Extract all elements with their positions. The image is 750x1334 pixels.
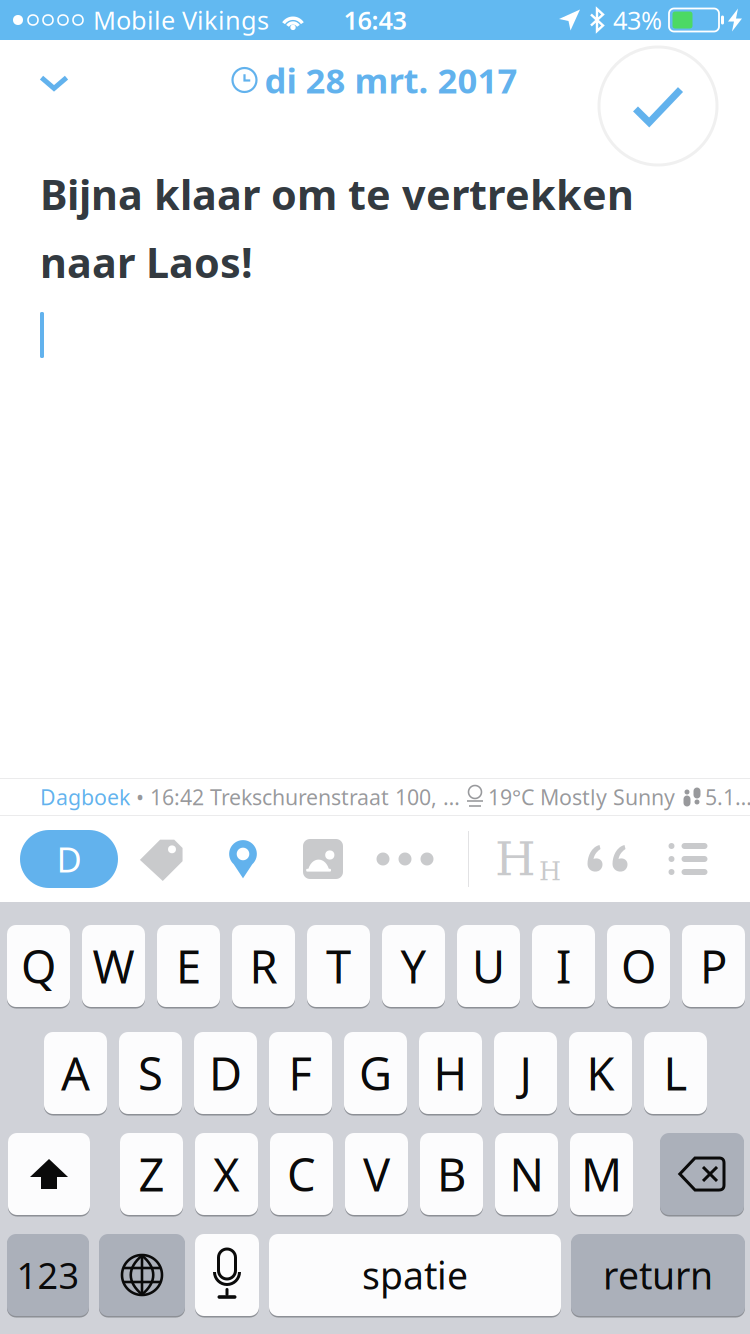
staticText: Q xyxy=(21,936,56,996)
button[interactable]: S xyxy=(119,1032,182,1114)
staticText: K xyxy=(586,1043,614,1103)
staticText: R xyxy=(249,936,277,996)
button[interactable]: G xyxy=(344,1032,407,1114)
button[interactable]: V xyxy=(345,1133,408,1215)
button[interactable]: E xyxy=(157,925,220,1007)
staticText: 16:43 xyxy=(343,3,406,37)
button[interactable]: Tags xyxy=(132,830,190,888)
staticText: 123 xyxy=(16,1251,79,1299)
button[interactable]: N xyxy=(495,1133,558,1215)
staticText: • 16:42 Trekschurenstraat 100, … xyxy=(130,783,460,811)
staticText: U xyxy=(472,936,505,996)
button[interactable]: 123 xyxy=(7,1234,89,1316)
button[interactable]: T xyxy=(307,925,370,1007)
button[interactable]: Collapse xyxy=(0,40,108,126)
button[interactable]: di 28 mrt. 2017 xyxy=(232,49,517,111)
button[interactable]: O xyxy=(607,925,670,1007)
button[interactable]: P xyxy=(682,925,745,1007)
staticText: Z xyxy=(138,1144,164,1204)
button[interactable]: X xyxy=(195,1133,258,1215)
button[interactable]: B xyxy=(420,1133,483,1215)
button[interactable]: Z xyxy=(120,1133,183,1215)
staticText: naar Laos! xyxy=(40,235,253,289)
button[interactable]: H xyxy=(419,1032,482,1114)
staticText: Dagboek xyxy=(40,783,130,811)
staticText: X xyxy=(213,1144,240,1204)
button[interactable]: Shift xyxy=(8,1133,90,1215)
staticText: D xyxy=(209,1043,242,1103)
staticText: 19°C Mostly Sunny xyxy=(488,783,675,811)
button[interactable]: Y xyxy=(382,925,445,1007)
staticText: Mobile Vikings xyxy=(93,3,269,37)
button[interactable]: K xyxy=(569,1032,632,1114)
staticText: S xyxy=(138,1043,163,1103)
button[interactable]: I xyxy=(532,925,595,1007)
staticText: I xyxy=(556,936,571,996)
staticText: return xyxy=(603,1250,713,1300)
staticText: 5.1… xyxy=(705,783,750,811)
staticText: C xyxy=(287,1144,316,1204)
button[interactable]: R xyxy=(232,925,295,1007)
staticText: H xyxy=(495,832,536,886)
staticText: J xyxy=(519,1043,531,1103)
button[interactable]: Q xyxy=(7,925,70,1007)
button[interactable]: spatie xyxy=(269,1234,561,1316)
button[interactable]: J xyxy=(494,1032,557,1114)
button[interactable]: Done xyxy=(599,47,717,165)
button[interactable]: return xyxy=(571,1234,745,1316)
button[interactable]: C xyxy=(270,1133,333,1215)
button[interactable]: List xyxy=(664,830,712,888)
button[interactable]: A xyxy=(44,1032,107,1114)
staticText: G xyxy=(359,1043,392,1103)
staticText: L xyxy=(663,1043,687,1103)
staticText: 43% xyxy=(613,3,662,37)
staticText: P xyxy=(700,936,727,996)
button[interactable]: L xyxy=(644,1032,707,1114)
staticText: F xyxy=(288,1043,312,1103)
button[interactable]: Photo xyxy=(294,830,352,888)
staticText: M xyxy=(581,1144,622,1204)
staticText: B xyxy=(437,1144,466,1204)
button[interactable]: D xyxy=(20,830,118,888)
staticText: spatie xyxy=(362,1250,468,1300)
staticText: Y xyxy=(400,936,426,996)
button[interactable]: W xyxy=(82,925,145,1007)
staticText: W xyxy=(92,936,134,996)
button[interactable]: D xyxy=(194,1032,257,1114)
button[interactable]: Quote xyxy=(585,830,629,888)
button[interactable]: Heading xyxy=(497,830,559,888)
staticText: Bijna klaar om te vertrekken xyxy=(40,167,634,221)
staticText: O xyxy=(621,936,656,996)
button[interactable]: Delete xyxy=(660,1133,744,1215)
button[interactable]: Next keyboard xyxy=(99,1234,185,1316)
staticText: H xyxy=(539,857,561,886)
button[interactable]: U xyxy=(457,925,520,1007)
button[interactable]: Dictate xyxy=(195,1234,259,1316)
staticText: E xyxy=(176,936,201,996)
staticText: V xyxy=(363,1144,390,1204)
staticText: H xyxy=(433,1043,467,1103)
button[interactable]: More xyxy=(376,830,434,888)
staticText: A xyxy=(61,1043,90,1103)
button[interactable]: F xyxy=(269,1032,332,1114)
staticText: di 28 mrt. 2017 xyxy=(264,57,517,103)
button[interactable]: M xyxy=(570,1133,633,1215)
staticText: N xyxy=(509,1144,543,1204)
button[interactable]: Location xyxy=(214,830,272,888)
staticText: T xyxy=(326,936,351,996)
staticText: D xyxy=(56,836,81,882)
